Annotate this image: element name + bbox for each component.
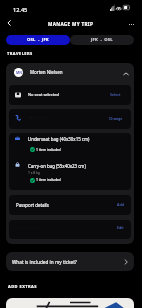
staticText: Select (110, 92, 121, 97)
button[interactable]: MN (6, 63, 134, 83)
staticText: Edit (117, 225, 124, 230)
staticText: Carry-on bag (55x40x23 cm) (28, 163, 86, 169)
staticText: Change (109, 116, 123, 121)
staticText: Passport details (16, 202, 49, 208)
staticText: No seat selected (28, 92, 59, 97)
staticText: 12.45 (13, 6, 28, 14)
staticText: 1 item included (36, 147, 61, 152)
staticText: Underseat bag (40x30x15 cm) (28, 136, 90, 142)
staticText: TRAVELERS (7, 51, 33, 56)
staticText: ADD EXTRAS (8, 284, 37, 289)
button[interactable]: Add passport details (9, 195, 131, 215)
staticText: JFK - OSL (91, 37, 113, 43)
staticText: What is included in my ticket? (12, 259, 77, 265)
button[interactable]: Select seat (9, 85, 131, 105)
staticText: 1 x 8 kg (28, 170, 40, 174)
button[interactable]: OSL - JFK (6, 35, 70, 45)
staticText: Morten Nielsen (30, 69, 63, 75)
button[interactable]: Edit contact details (9, 220, 131, 239)
button[interactable]: More options (124, 17, 138, 31)
staticText: 1 item included (36, 177, 61, 182)
staticText: MN (16, 70, 22, 75)
button[interactable] (6, 298, 134, 308)
button[interactable]: What is included in my ticket? (6, 252, 134, 271)
button[interactable]: JFK - OSL (70, 35, 134, 45)
staticText: MANAGE MY TRIP (48, 21, 94, 27)
staticText: OSL - JFK (27, 37, 49, 43)
button[interactable]: Back (2, 16, 16, 30)
button[interactable]: Change phone number (9, 109, 131, 129)
staticText: Add (117, 202, 124, 207)
